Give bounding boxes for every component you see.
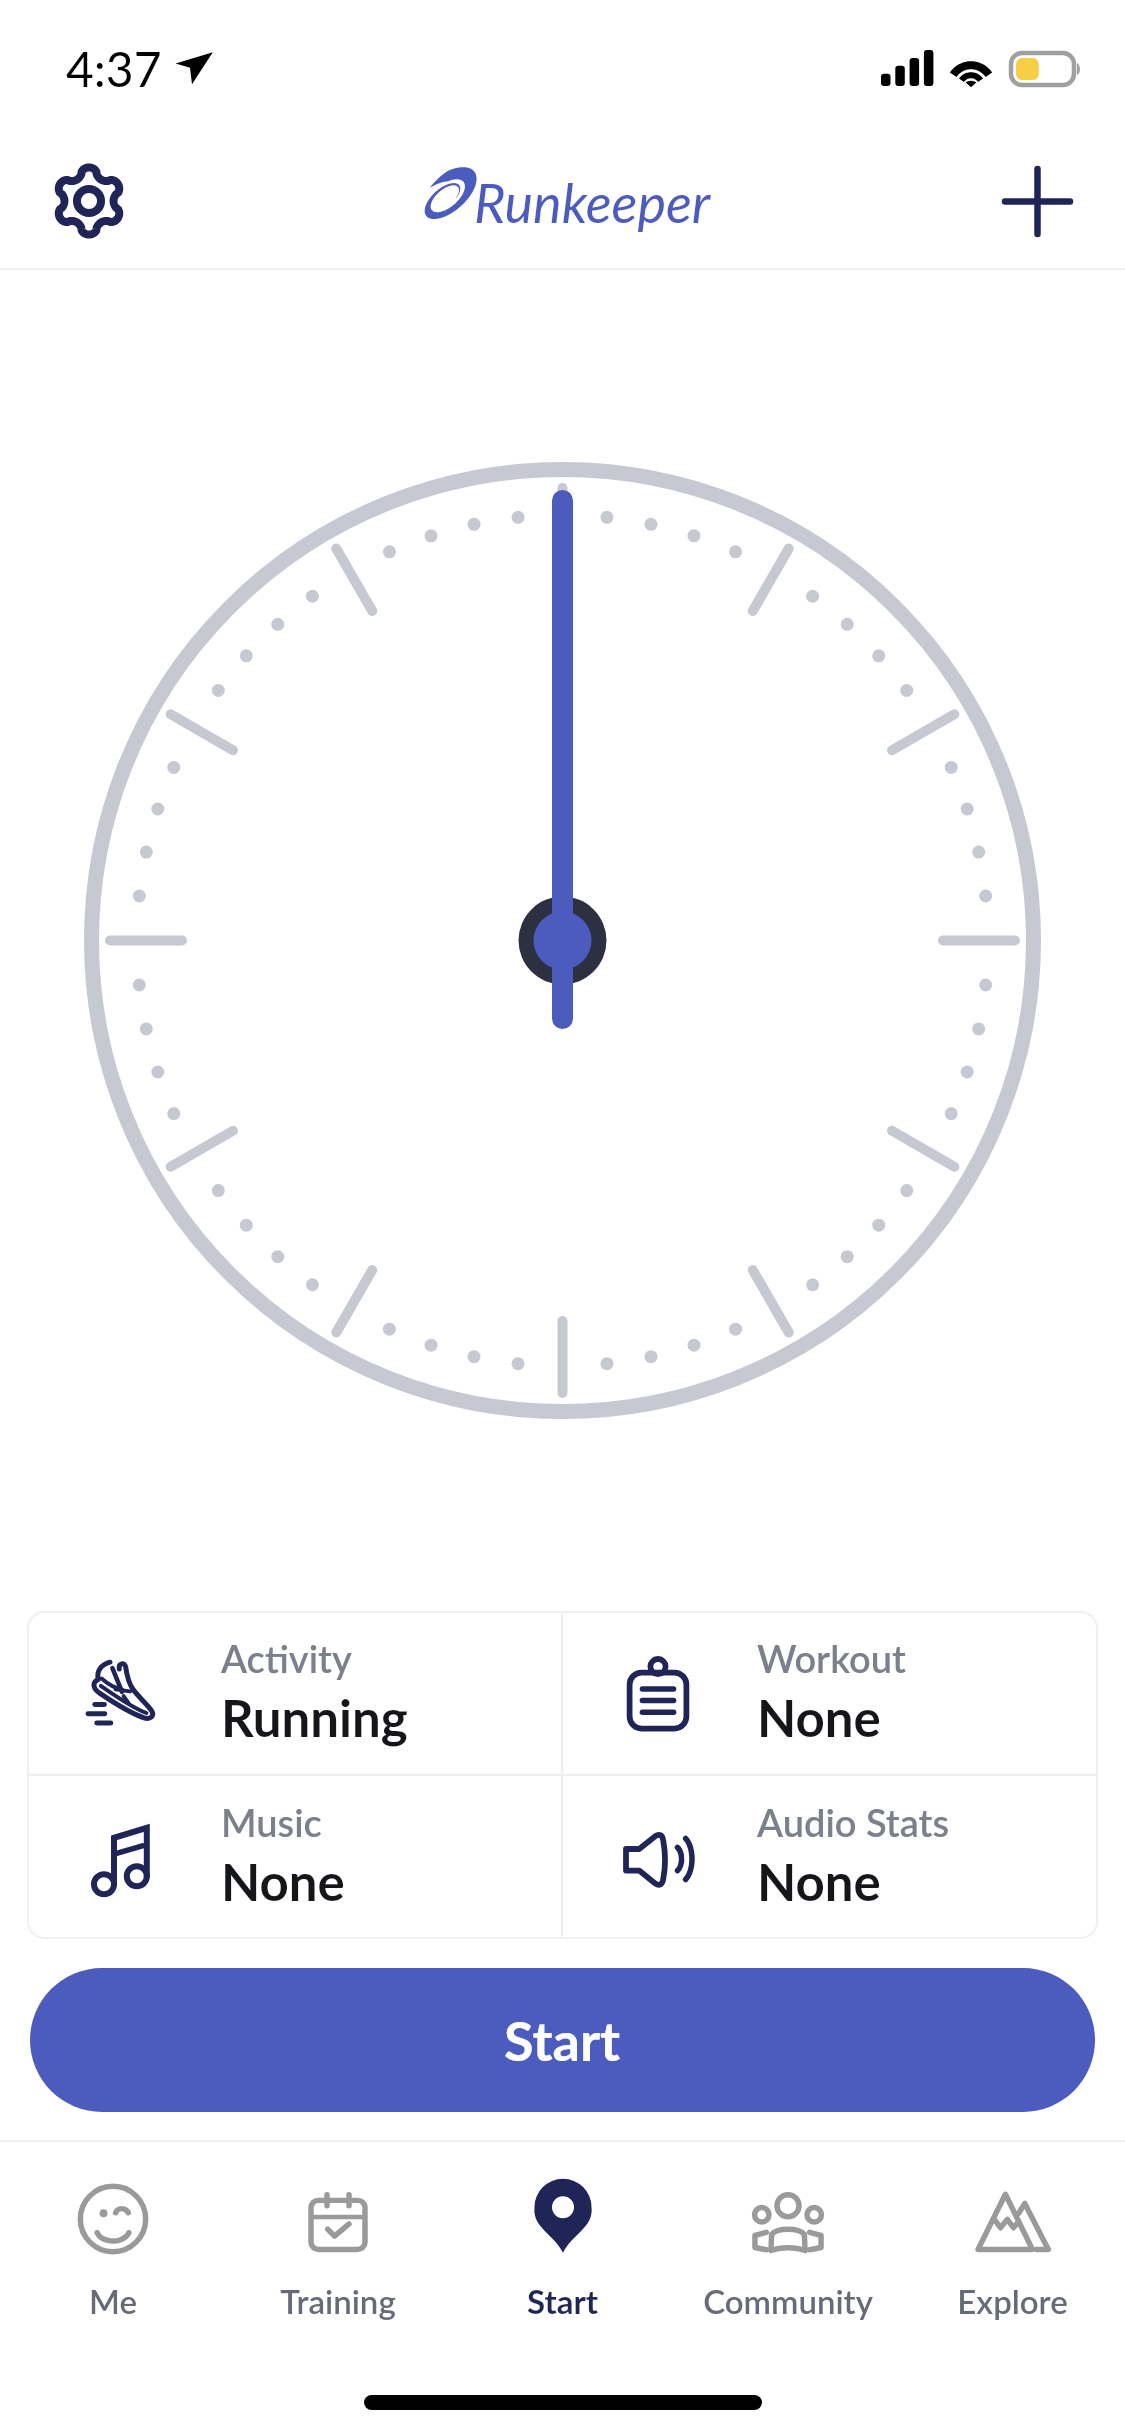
staticText: Running: [221, 1687, 408, 1748]
button[interactable]: Start: [450, 2147, 675, 2347]
button[interactable]: Me: [0, 2147, 225, 2347]
staticText: Runkeeper: [474, 170, 711, 235]
staticText: None: [757, 1687, 881, 1748]
staticText: 4:37: [66, 40, 162, 98]
button[interactable]: Add activity: [985, 149, 1089, 253]
button[interactable]: Settings: [33, 145, 145, 257]
staticText: Community: [703, 2281, 873, 2321]
button[interactable]: Community: [675, 2147, 900, 2347]
button[interactable]: Explore: [900, 2147, 1125, 2347]
staticText: Start: [504, 2008, 621, 2073]
button[interactable]: Workout: [563, 1611, 1098, 1774]
button[interactable]: Audio Stats: [563, 1776, 1098, 1937]
staticText: Explore: [957, 2281, 1068, 2321]
staticText: None: [221, 1851, 345, 1912]
staticText: Workout: [757, 1635, 906, 1681]
staticText: Music: [221, 1799, 322, 1845]
button[interactable]: Training: [225, 2147, 450, 2347]
staticText: Activity: [221, 1635, 352, 1681]
staticText: Start: [527, 2281, 598, 2321]
button[interactable]: Music: [27, 1776, 561, 1937]
staticText: Me: [89, 2281, 137, 2321]
staticText: None: [757, 1851, 881, 1912]
button[interactable]: Start: [30, 1968, 1095, 2112]
button[interactable]: Activity: [27, 1611, 561, 1774]
staticText: Training: [280, 2281, 396, 2321]
staticText: Audio Stats: [757, 1799, 950, 1845]
